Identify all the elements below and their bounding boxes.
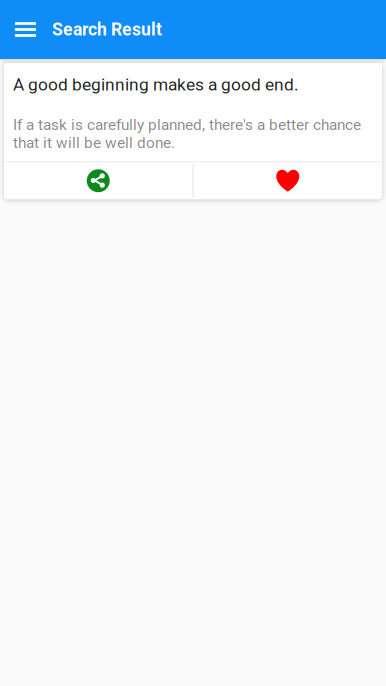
button[interactable]: Menu bbox=[0, 0, 52, 59]
staticText: Search Result bbox=[52, 19, 162, 40]
button[interactable]: Share bbox=[4, 162, 192, 199]
staticText: A good beginning makes a good end. bbox=[13, 74, 299, 95]
staticText: If a task is carefully planned, there's … bbox=[13, 116, 361, 152]
button[interactable]: Favourite bbox=[193, 162, 382, 199]
